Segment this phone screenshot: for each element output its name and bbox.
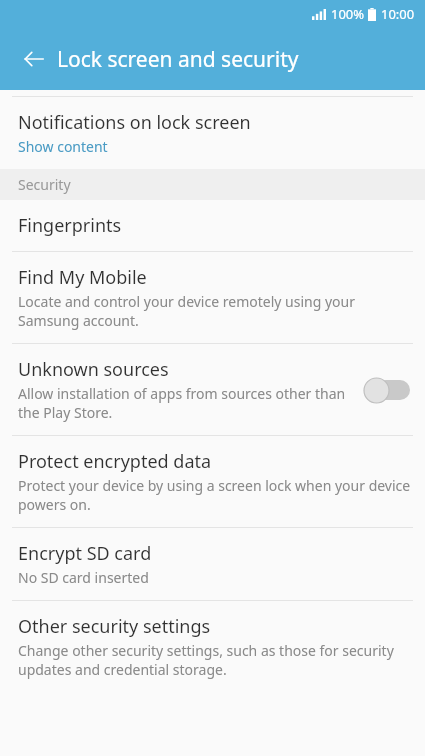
staticText: Find My Mobile — [18, 265, 147, 290]
staticText: 100% — [331, 5, 365, 23]
button[interactable]: Unknown sources — [0, 344, 425, 435]
staticText: No SD card inserted — [18, 568, 149, 587]
staticText: Protect your device by using a screen lo… — [18, 476, 411, 514]
staticText: Change other security settings, such as … — [18, 641, 411, 679]
button[interactable]: Fingerprints — [0, 200, 425, 251]
button[interactable]: Find My Mobile — [0, 252, 425, 343]
button[interactable]: Protect encrypted data — [0, 436, 425, 527]
button[interactable]: Other security settings — [0, 601, 425, 692]
staticText: Lock screen and security — [57, 45, 299, 74]
staticText: Encrypt SD card — [18, 541, 152, 566]
staticText: Locate and control your device remotely … — [18, 292, 411, 330]
staticText: Notifications on lock screen — [18, 110, 251, 135]
staticText: Show content — [18, 137, 108, 156]
staticText: Allow installation of apps from sources … — [18, 384, 353, 422]
staticText: Security — [18, 175, 71, 194]
staticText: Fingerprints — [18, 213, 122, 238]
button[interactable]: Encrypt SD card — [0, 528, 425, 600]
button[interactable]: Unknown sources toggle — [363, 375, 411, 405]
staticText: 10:00 — [381, 5, 415, 23]
button[interactable]: Notifications on lock screen — [0, 97, 425, 169]
staticText: Protect encrypted data — [18, 449, 212, 474]
staticText: Unknown sources — [18, 357, 169, 382]
button[interactable]: Back — [12, 37, 56, 81]
staticText: Other security settings — [18, 614, 211, 639]
